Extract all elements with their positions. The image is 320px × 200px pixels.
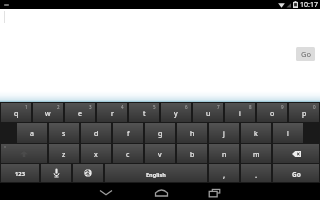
button[interactable]: b — [177, 144, 207, 163]
button[interactable]: English — [105, 164, 207, 182]
staticText: h — [190, 129, 195, 139]
button[interactable]: j — [209, 123, 239, 143]
staticText: 5 — [153, 104, 156, 110]
staticText: Go — [292, 170, 301, 179]
button[interactable]: d — [81, 123, 111, 143]
staticText: , — [223, 169, 226, 180]
staticText: 4 — [121, 104, 124, 110]
staticText: i — [239, 109, 241, 119]
staticText: . — [255, 169, 258, 180]
button[interactable]: 123 — [1, 164, 39, 182]
button[interactable]: i — [225, 103, 255, 122]
other: Change input language — [84, 169, 92, 177]
staticText: 2 — [57, 104, 60, 110]
staticText: x — [94, 150, 98, 160]
button[interactable]: Change input language — [73, 164, 103, 182]
other: Voice input — [53, 168, 60, 178]
staticText: f — [127, 129, 130, 139]
staticText: d — [94, 129, 99, 139]
button[interactable]: x — [81, 144, 111, 163]
button[interactable]: Home — [141, 183, 181, 200]
button[interactable]: n — [209, 144, 239, 163]
staticText: z — [62, 150, 66, 160]
staticText: r — [111, 109, 114, 119]
button[interactable]: l — [273, 123, 303, 143]
button[interactable]: e — [65, 103, 95, 122]
button[interactable]: . — [241, 164, 271, 182]
staticText: e — [78, 109, 82, 119]
staticText: a — [30, 129, 34, 139]
button[interactable]: y — [161, 103, 191, 122]
button[interactable]: m — [241, 144, 271, 163]
staticText: 10:17 — [300, 0, 318, 9]
button[interactable]: , — [209, 164, 239, 182]
staticText: g — [158, 129, 163, 139]
button[interactable]: z — [49, 144, 79, 163]
staticText: n — [222, 150, 227, 160]
button[interactable]: Go — [273, 164, 319, 182]
button[interactable]: f — [113, 123, 143, 143]
staticText: y — [174, 109, 178, 119]
staticText: p — [302, 109, 307, 119]
staticText: w — [45, 109, 51, 119]
button[interactable] — [273, 144, 319, 163]
staticText: m — [253, 150, 260, 160]
staticText: v — [158, 150, 162, 160]
button[interactable]: t — [129, 103, 159, 122]
button[interactable]: p — [289, 103, 319, 122]
staticText: 123 — [15, 170, 25, 178]
staticText: u — [206, 109, 211, 119]
button[interactable]: w — [33, 103, 63, 122]
button[interactable]: u — [193, 103, 223, 122]
staticText: English — [146, 171, 166, 178]
staticText: s — [62, 129, 66, 139]
staticText: b — [190, 150, 195, 160]
button[interactable]: s — [49, 123, 79, 143]
staticText: 7 — [217, 104, 220, 110]
button[interactable]: a — [17, 123, 47, 143]
staticText: 8 — [249, 104, 252, 110]
button[interactable]: q — [1, 103, 31, 122]
staticText: o — [270, 109, 275, 119]
button[interactable]: r — [97, 103, 127, 122]
staticText: c — [126, 150, 130, 160]
staticText: 6 — [185, 104, 188, 110]
staticText: j — [223, 129, 225, 139]
staticText: 3 — [89, 104, 92, 110]
button[interactable]: Voice input — [41, 164, 71, 182]
staticText: k — [254, 129, 258, 139]
button[interactable]: Recent apps — [194, 183, 234, 200]
staticText: l — [287, 129, 289, 139]
button[interactable]: h — [177, 123, 207, 143]
staticText: 1 — [25, 104, 28, 110]
button[interactable]: v — [145, 144, 175, 163]
button[interactable] — [1, 144, 47, 163]
staticText: t — [143, 109, 146, 119]
button[interactable]: c — [113, 144, 143, 163]
button[interactable]: Go — [296, 47, 315, 61]
button[interactable]: k — [241, 123, 271, 143]
button[interactable]: o — [257, 103, 287, 122]
staticText: q — [14, 109, 19, 119]
staticText: Go — [301, 49, 311, 59]
button[interactable]: g — [145, 123, 175, 143]
staticText: 0 — [313, 104, 316, 110]
button[interactable]: Back — [86, 183, 126, 200]
staticText: 9 — [281, 104, 284, 110]
